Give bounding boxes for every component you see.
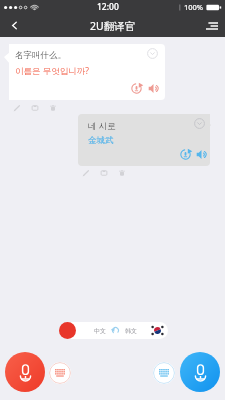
staticText: 中文 [94,327,106,335]
staticText: 韩文 [125,327,137,335]
button[interactable]: Speak [195,148,208,161]
button[interactable]: Replay [179,148,192,161]
button[interactable]: Speak [147,82,160,95]
button[interactable]: Korean [149,322,166,339]
button[interactable]: Chinese microphone [5,352,45,392]
staticText: 100% [184,2,204,12]
button[interactable]: Edit [82,169,90,177]
button[interactable]: Menu [199,14,225,37]
button[interactable]: Back [0,14,28,37]
button[interactable]: Delete [49,104,57,112]
staticText: 2U翻译官 [90,19,136,33]
staticText: 12:00 [97,1,119,13]
button[interactable]: Edit [13,104,21,112]
button[interactable]: 中文 [62,322,168,339]
button[interactable]: Replay [130,82,143,95]
staticText: 이름은 무엇입니까? [15,65,89,77]
staticText: 네 시로 [88,120,116,132]
button[interactable]: Delete [118,169,126,177]
button[interactable]: 네 시로 [78,114,210,166]
button[interactable]: Collapse [194,118,205,129]
button[interactable]: Korean microphone [180,352,220,392]
button[interactable]: Korean keyboard [153,362,175,384]
button[interactable]: 名字叫什么。 [9,44,165,100]
staticText: 金城武 [88,135,114,146]
button[interactable]: Save [31,104,39,112]
button[interactable]: Collapse [147,48,158,59]
button[interactable]: Swap languages [111,326,120,335]
button[interactable]: Chinese keyboard [49,362,71,384]
staticText: 名字叫什么。 [15,50,66,61]
button[interactable]: Save [100,169,108,177]
button[interactable]: Chinese [59,322,76,339]
